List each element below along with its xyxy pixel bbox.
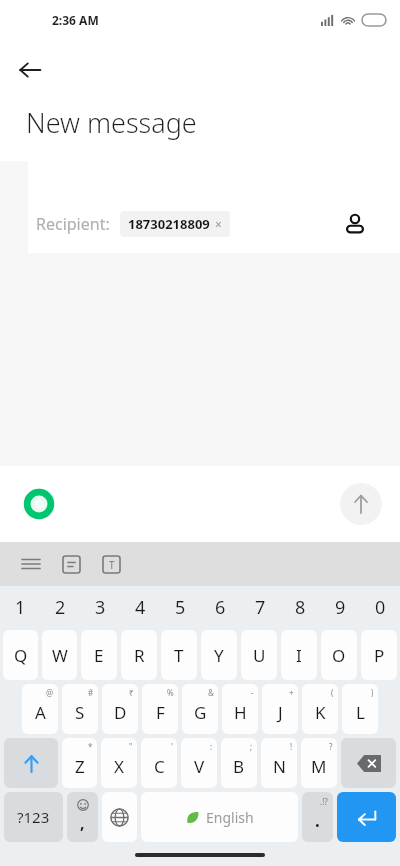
- button[interactable]: &: [182, 684, 218, 734]
- staticText: D: [114, 701, 127, 724]
- button[interactable]: !: [261, 738, 297, 788]
- staticText: -: [251, 687, 254, 698]
- button[interactable]: Enter: [337, 792, 396, 842]
- button[interactable]: O: [321, 630, 357, 680]
- staticText: 7: [255, 595, 266, 620]
- staticText: G: [194, 701, 207, 724]
- button[interactable]: Backspace: [341, 738, 396, 788]
- button[interactable]: ): [342, 684, 378, 734]
- button[interactable]: 2: [40, 586, 80, 628]
- button[interactable]: %: [142, 684, 178, 734]
- button[interactable]: Q: [3, 630, 38, 680]
- button[interactable]: 7: [240, 586, 280, 628]
- button[interactable]: 18730218809: [128, 215, 222, 233]
- button[interactable]: *: [62, 738, 97, 788]
- staticText: 4: [135, 595, 146, 620]
- staticText: English: [206, 808, 254, 827]
- button[interactable]: +: [262, 684, 298, 734]
- button[interactable]: ;: [221, 738, 257, 788]
- staticText: 1: [15, 595, 26, 620]
- button[interactable]: Clipboard: [56, 549, 86, 579]
- button[interactable]: Recipient:: [28, 161, 400, 253]
- button[interactable]: T: [161, 630, 197, 680]
- staticText: I: [296, 644, 302, 667]
- button[interactable]: :: [181, 738, 217, 788]
- staticText: W: [52, 644, 68, 667]
- button[interactable]: Comma and emoji: [67, 792, 98, 842]
- staticText: *: [88, 741, 93, 752]
- staticText: #: [88, 687, 94, 698]
- staticText: F: [156, 701, 165, 724]
- staticText: X: [114, 755, 124, 778]
- button[interactable]: 9: [320, 586, 360, 628]
- staticText: Q: [14, 644, 28, 667]
- staticText: .!?: [320, 796, 328, 807]
- staticText: (: [331, 687, 334, 698]
- button[interactable]: Back: [8, 48, 52, 92]
- staticText: V: [194, 755, 205, 778]
- button[interactable]: 3: [80, 586, 120, 628]
- staticText: ₹: [129, 687, 134, 698]
- button[interactable]: English: [141, 792, 298, 842]
- staticText: R: [134, 644, 145, 667]
- button[interactable]: ₹: [102, 684, 138, 734]
- staticText: T: [174, 644, 184, 667]
- button[interactable]: #: [62, 684, 98, 734]
- staticText: S: [75, 701, 85, 724]
- button[interactable]: W: [42, 630, 77, 680]
- button[interactable]: Text tools: [96, 549, 126, 579]
- staticText: %: [167, 687, 174, 698]
- staticText: 2:36 AM: [52, 12, 99, 28]
- button[interactable]: 6: [200, 586, 240, 628]
- button[interactable]: P: [361, 630, 397, 680]
- button[interactable]: Y: [201, 630, 237, 680]
- button[interactable]: E: [81, 630, 117, 680]
- staticText: Y: [214, 644, 224, 667]
- staticText: L: [356, 701, 365, 724]
- button[interactable]: ': [141, 738, 177, 788]
- staticText: ': [171, 741, 173, 752]
- button[interactable]: Attach: [18, 483, 60, 525]
- staticText: E: [94, 644, 104, 667]
- button[interactable]: (: [302, 684, 338, 734]
- staticText: U: [253, 644, 266, 667]
- staticText: ×: [215, 216, 222, 232]
- button[interactable]: 0: [360, 586, 400, 628]
- button[interactable]: ?123: [4, 792, 63, 842]
- staticText: .: [315, 809, 320, 832]
- staticText: ?: [329, 741, 333, 752]
- button[interactable]: ": [101, 738, 137, 788]
- button[interactable]: 4: [120, 586, 160, 628]
- staticText: ): [371, 687, 374, 698]
- staticText: Z: [75, 755, 85, 778]
- staticText: ?123: [17, 807, 50, 827]
- button[interactable]: Choose contact: [338, 207, 372, 241]
- staticText: P: [374, 644, 385, 667]
- staticText: ,: [80, 812, 85, 834]
- button[interactable]: Change language: [102, 792, 137, 842]
- staticText: T: [109, 558, 115, 572]
- staticText: A: [35, 701, 46, 724]
- staticText: 5: [175, 595, 186, 620]
- staticText: 3: [95, 595, 106, 620]
- button[interactable]: Send: [340, 483, 382, 525]
- button[interactable]: R: [121, 630, 157, 680]
- staticText: :: [210, 741, 213, 752]
- staticText: @: [46, 687, 54, 698]
- staticText: O: [332, 644, 346, 667]
- button[interactable]: Shift: [4, 738, 58, 788]
- button[interactable]: 5: [160, 586, 200, 628]
- staticText: K: [315, 701, 326, 724]
- button[interactable]: 8: [280, 586, 320, 628]
- button[interactable]: Menu: [16, 549, 46, 579]
- button[interactable]: Period: [302, 792, 333, 842]
- staticText: C: [154, 755, 165, 778]
- button[interactable]: @: [22, 684, 58, 734]
- button[interactable]: -: [222, 684, 258, 734]
- button[interactable]: ?: [301, 738, 337, 788]
- staticText: ;: [250, 741, 253, 752]
- button[interactable]: I: [281, 630, 317, 680]
- staticText: J: [278, 701, 283, 724]
- button[interactable]: 1: [0, 586, 40, 628]
- button[interactable]: U: [241, 630, 277, 680]
